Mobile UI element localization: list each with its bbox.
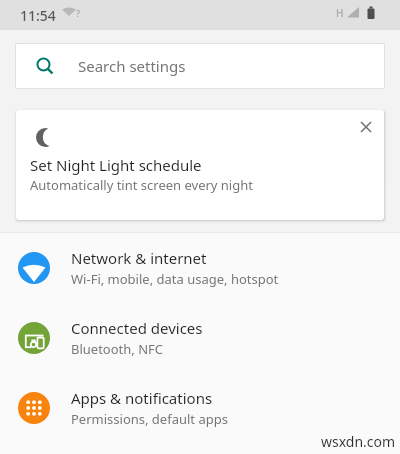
staticText: 11:54 <box>20 6 56 25</box>
staticText: ? <box>76 7 80 19</box>
staticText: H <box>336 6 344 20</box>
staticText: Connected devices <box>71 318 203 338</box>
staticText: Wi-Fi, mobile, data usage, hotspot <box>71 270 279 288</box>
staticText: wsxdn.com <box>321 432 396 451</box>
staticText: Set Night Light schedule <box>30 155 202 175</box>
button[interactable] <box>355 116 377 138</box>
button[interactable]: Apps & notifications <box>0 373 400 443</box>
button[interactable]: Set Night Light schedule <box>16 110 384 220</box>
button[interactable]: Connected devices <box>0 303 400 373</box>
staticText: Apps & notifications <box>71 388 213 408</box>
staticText: Permissions, default apps <box>71 410 228 428</box>
button[interactable]: Network & internet <box>0 233 400 303</box>
staticText: Search settings <box>78 56 186 76</box>
button[interactable]: Search settings <box>15 43 385 89</box>
staticText: Network & internet <box>71 248 207 268</box>
staticText: Automatically tint screen every night <box>30 176 253 194</box>
staticText: Bluetooth, NFC <box>71 340 164 358</box>
